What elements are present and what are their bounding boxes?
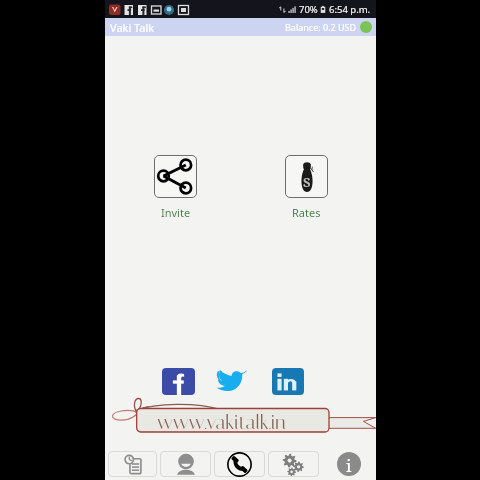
button[interactable]: Info bbox=[324, 451, 373, 477]
button[interactable]: Contacts bbox=[160, 451, 211, 477]
button[interactable]: Settings bbox=[268, 451, 319, 477]
staticText: Vaki Talk bbox=[110, 20, 155, 35]
staticText: www.vakitalk.in bbox=[157, 410, 287, 434]
staticText: 6:54 p.m. bbox=[329, 3, 371, 16]
button[interactable]: Call history bbox=[108, 451, 157, 477]
staticText: S bbox=[303, 173, 311, 191]
staticText: Rates bbox=[292, 205, 321, 220]
staticText: 70% bbox=[299, 3, 318, 16]
staticText: i bbox=[346, 454, 352, 477]
staticText: Invite bbox=[161, 205, 191, 220]
button[interactable]: Invite bbox=[154, 155, 197, 220]
button[interactable]: Facebook bbox=[162, 368, 195, 395]
button[interactable]: Dialer bbox=[214, 451, 265, 477]
button[interactable]: S bbox=[285, 155, 328, 220]
button[interactable]: www.vakitalk.in bbox=[105, 398, 376, 436]
button[interactable]: LinkedIn bbox=[272, 368, 304, 395]
staticText: Balance: 0.2 USD bbox=[285, 21, 357, 33]
button[interactable]: Twitter bbox=[215, 367, 247, 394]
